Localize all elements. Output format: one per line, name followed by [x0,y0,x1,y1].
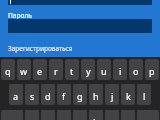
button[interactable]: o [129,59,143,80]
staticText: j [111,90,114,102]
button[interactable]: Зарегистрироваться [8,44,73,53]
staticText: i [119,65,122,77]
staticText: l [143,90,146,102]
button[interactable]: e [33,59,47,80]
button[interactable]: t [65,59,79,80]
button[interactable]: a [9,84,23,105]
staticText: w [20,65,28,77]
button[interactable]: d [41,84,55,105]
button[interactable]: h [89,84,103,105]
staticText: e [37,65,43,77]
staticText: k [126,90,131,102]
staticText: a [13,90,19,102]
button[interactable]: s [25,84,39,105]
button[interactable]: p [145,59,159,80]
staticText: o [133,65,139,77]
staticText: g [77,90,83,102]
staticText: q [5,65,11,77]
staticText: b [93,116,99,120]
staticText: u [101,65,107,77]
staticText: r [54,65,58,77]
button[interactable]: k [121,84,135,105]
staticText: Пароль [8,11,32,20]
button[interactable]: g [73,84,87,105]
staticText: t [70,65,74,77]
staticText: d [45,90,51,102]
staticText: p [149,65,155,77]
staticText: f [62,90,66,102]
staticText: s [30,90,35,102]
button[interactable]: u [97,59,111,80]
button[interactable]: w [17,59,31,80]
button[interactable]: f [57,84,71,105]
staticText: y [86,65,91,77]
button[interactable]: r [49,59,63,80]
button[interactable]: l [137,84,151,105]
button[interactable]: b [89,110,103,120]
button[interactable]: q [1,59,15,80]
staticText: h [93,90,99,102]
button[interactable]: y [81,59,95,80]
button[interactable]: i [113,59,127,80]
button[interactable]: j [105,84,119,105]
